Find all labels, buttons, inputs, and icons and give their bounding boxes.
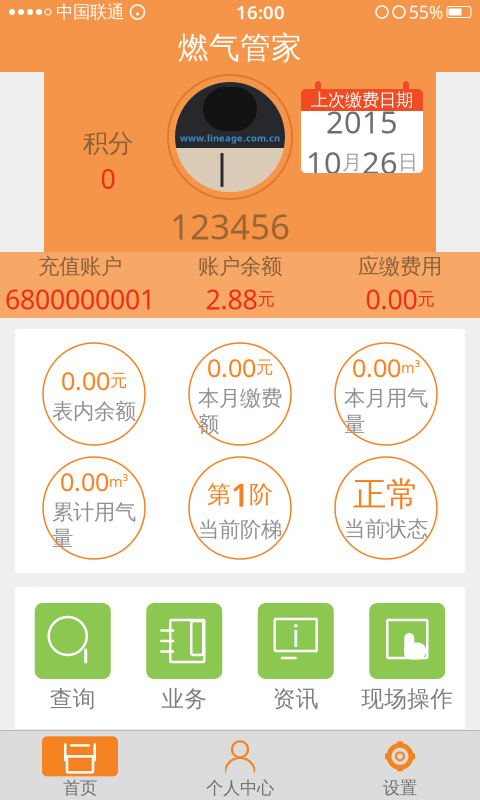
staticText: 0.00: [352, 350, 401, 384]
staticText: 资讯: [273, 685, 319, 713]
staticText: 充值账户: [38, 253, 122, 279]
staticText: 中国联通: [56, 1, 124, 23]
staticText: 首页: [63, 777, 97, 799]
staticText: 当前阶梯: [198, 517, 282, 543]
staticText: www.lineage.com.cn: [180, 132, 280, 144]
staticText: 0.00: [365, 281, 417, 317]
button[interactable]: 设置: [320, 736, 480, 799]
staticText: 10: [306, 142, 342, 183]
staticText: 阶: [249, 480, 273, 509]
button[interactable]: User avatar: [168, 75, 292, 199]
staticText: 个人中心: [206, 777, 274, 799]
button[interactable]: 0.00: [189, 343, 291, 445]
staticText: m³: [109, 472, 128, 491]
staticText: i: [292, 615, 300, 655]
staticText: 0.00: [61, 364, 110, 397]
staticText: 1: [231, 473, 249, 516]
staticText: 现场操作: [361, 685, 453, 713]
staticText: 55%: [409, 0, 443, 23]
staticText: 元: [110, 370, 127, 391]
staticText: 0.00: [207, 350, 256, 384]
button[interactable]: 0.00: [43, 457, 145, 559]
button[interactable]: 0.00: [43, 343, 145, 445]
staticText: 当前状态: [344, 516, 428, 542]
staticText: 123456: [170, 203, 290, 249]
staticText: 元: [256, 357, 273, 378]
button[interactable]: 业务: [146, 603, 222, 713]
staticText: 积分: [83, 128, 133, 159]
button[interactable]: 现场操作: [361, 603, 453, 713]
button[interactable]: 首页: [0, 736, 160, 799]
button[interactable]: 查询: [35, 603, 111, 713]
button[interactable]: 正常: [335, 457, 437, 559]
staticText: 表内余额: [52, 398, 136, 424]
button[interactable]: 第: [189, 457, 291, 559]
staticText: 元: [417, 288, 434, 310]
staticText: 0.00: [60, 464, 109, 498]
staticText: 16:00: [236, 0, 285, 24]
staticText: 2015: [326, 101, 398, 142]
staticText: 第: [207, 480, 231, 509]
button[interactable]: 个人中心: [160, 736, 320, 799]
staticText: 设置: [383, 777, 417, 799]
staticText: 正常: [353, 474, 419, 515]
staticText: 累计用气量: [52, 499, 136, 551]
staticText: 账户余额: [198, 253, 282, 279]
staticText: 月: [342, 150, 362, 175]
staticText: 应缴费用: [358, 253, 442, 279]
staticText: 业务: [161, 685, 207, 713]
staticText: 查询: [50, 685, 96, 713]
staticText: 0: [100, 161, 115, 196]
button[interactable]: i: [258, 603, 334, 713]
staticText: 本月用气量: [344, 385, 428, 437]
staticText: 燃气管家: [178, 29, 302, 67]
staticText: 元: [257, 288, 274, 310]
staticText: 本月缴费额: [198, 385, 282, 437]
button[interactable]: 0.00: [335, 343, 437, 445]
staticText: 上次缴费日期: [311, 89, 413, 111]
staticText: 26: [362, 142, 398, 183]
staticText: 2.88: [205, 281, 257, 317]
staticText: 6800000001: [5, 281, 155, 317]
staticText: m³: [401, 358, 420, 377]
staticText: 日: [398, 150, 418, 175]
